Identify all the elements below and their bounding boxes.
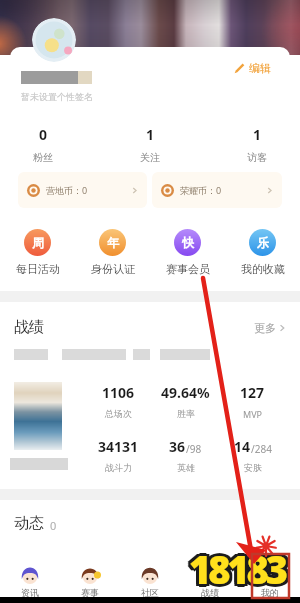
staticText: 18183	[189, 540, 285, 592]
staticText: 年	[107, 235, 119, 250]
staticText: 每日活动	[16, 262, 60, 276]
staticText: 18183	[186, 545, 282, 597]
staticText: 粉丝	[33, 151, 53, 164]
staticText: 战绩	[201, 587, 219, 597]
staticText: 127	[240, 383, 265, 402]
staticText: 赛事会员	[166, 262, 210, 276]
staticText: 18183	[187, 545, 283, 597]
staticText: 1106	[102, 383, 135, 402]
button[interactable]: Profile avatar	[32, 18, 76, 62]
staticText: 乐	[257, 235, 269, 250]
staticText: 赛事	[81, 587, 99, 597]
button[interactable]: 编辑	[230, 58, 275, 78]
staticText: 18183	[186, 541, 282, 593]
staticText: 18183	[186, 543, 282, 595]
button[interactable]: 营地币：0	[18, 172, 147, 208]
button[interactable]: 资讯	[0, 553, 60, 597]
staticText: 身份认证	[91, 262, 135, 276]
button[interactable]: 荣耀币：0	[152, 172, 282, 208]
staticText: 战斗力	[105, 462, 132, 473]
staticText: 18183	[187, 541, 283, 593]
staticText: 暂未设置个性签名	[21, 91, 93, 102]
staticText: 34131	[98, 437, 139, 456]
staticText: 18183	[192, 541, 288, 593]
staticText: 周	[32, 235, 44, 250]
staticText: 0	[39, 125, 48, 144]
staticText: 编辑	[249, 61, 271, 75]
staticText: 36	[169, 437, 186, 456]
staticText: 0	[50, 518, 57, 533]
staticText: 访客	[247, 151, 267, 164]
staticText: 我的	[261, 587, 279, 597]
staticText: 1	[146, 125, 155, 144]
staticText: /284	[251, 442, 272, 456]
staticText: 18183	[192, 543, 288, 595]
staticText: 18183	[189, 546, 285, 598]
staticText: 总场次	[105, 408, 132, 419]
button[interactable]: 1	[130, 125, 170, 164]
staticText: 动态	[14, 514, 44, 533]
staticText: 资讯	[21, 587, 39, 597]
button[interactable]: 更多	[254, 321, 286, 335]
button[interactable]: 我的	[240, 553, 300, 597]
staticText: 荣耀币：0	[180, 184, 222, 196]
staticText: MVP	[243, 408, 263, 420]
button[interactable]: 周	[0, 212, 75, 291]
button[interactable]: 快	[150, 212, 225, 291]
staticText: 胜率	[177, 408, 195, 419]
button[interactable]: 乐	[225, 212, 300, 291]
staticText: 战绩	[14, 318, 44, 337]
button[interactable]: 赛事	[60, 553, 120, 597]
staticText: 更多	[254, 321, 276, 335]
staticText: 18183	[189, 543, 285, 595]
staticText: 关注	[140, 151, 160, 164]
staticText: 社区	[141, 587, 159, 597]
staticText: 安肤	[244, 462, 262, 473]
button[interactable]: 0	[23, 125, 63, 164]
button[interactable]: 年	[75, 212, 150, 291]
staticText: 英雄	[177, 462, 195, 473]
staticText: 我的收藏	[241, 262, 285, 276]
button[interactable]: 战绩	[180, 553, 240, 597]
staticText: 1	[253, 125, 262, 144]
staticText: 49.64%	[161, 383, 210, 402]
staticText: 营地币：0	[46, 184, 88, 196]
staticText: 18183	[191, 545, 287, 597]
staticText: /98	[186, 442, 202, 456]
button[interactable]: 社区	[120, 553, 180, 597]
staticText: 快	[182, 235, 194, 250]
staticText: 14	[234, 437, 251, 456]
staticText: 18183	[191, 541, 287, 593]
staticText: 18183	[192, 545, 288, 597]
button[interactable]: 1	[237, 125, 277, 164]
